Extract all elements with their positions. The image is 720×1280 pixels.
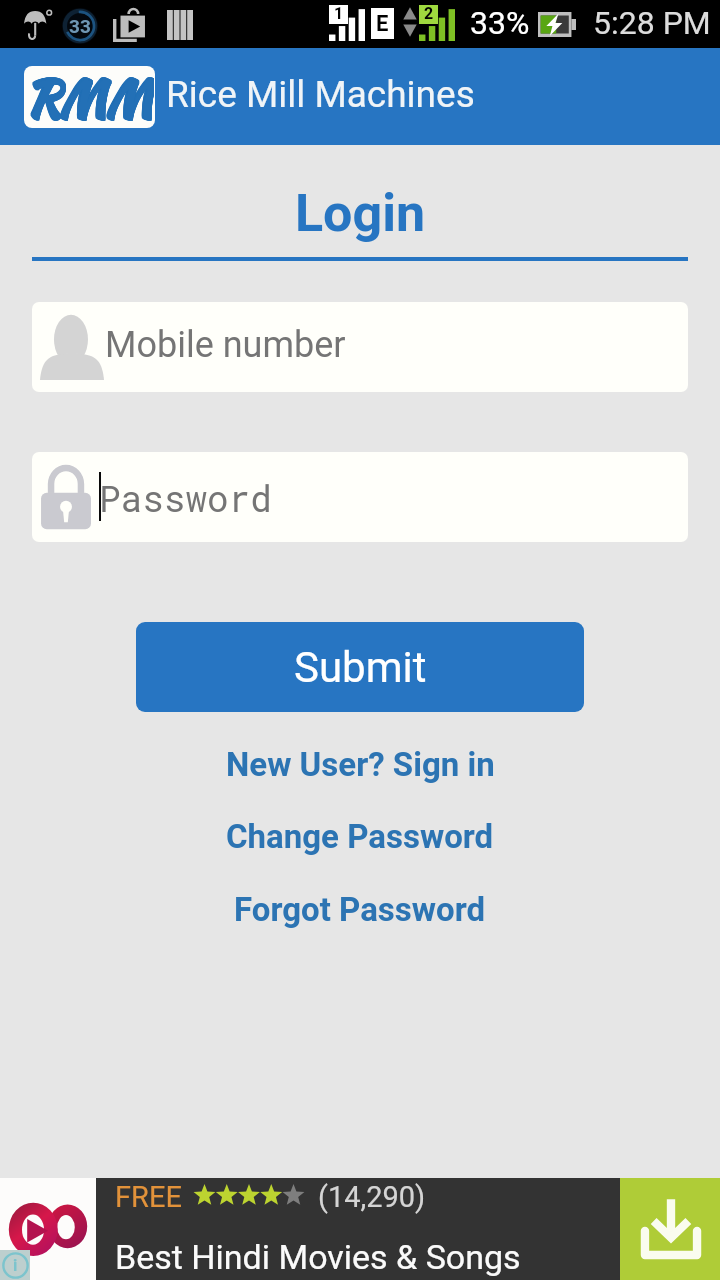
button[interactable]: Submit (136, 622, 584, 712)
staticText: 1 (334, 4, 344, 23)
staticText: Best Hindi Movies & Songs (115, 1237, 521, 1277)
staticText: RMM (26, 66, 153, 123)
staticText: RMM (25, 66, 152, 125)
button[interactable]: Password (32, 452, 688, 542)
staticText: RMM (27, 66, 154, 123)
staticText: FREE (115, 1180, 182, 1214)
staticText: Rice Mill Machines (166, 73, 475, 116)
staticText: E (376, 11, 389, 37)
staticText: RMM (26, 66, 153, 125)
button[interactable]: Forgot Password (0, 886, 720, 932)
staticText: RMM (27, 66, 154, 125)
button[interactable]: i (0, 1178, 96, 1280)
staticText: RMM (25, 66, 152, 123)
staticText: New User? Sign in (226, 745, 495, 784)
button[interactable]: New User? Sign in (0, 741, 720, 787)
staticText: Password (99, 474, 272, 521)
button[interactable]: Install app (620, 1178, 720, 1280)
staticText: RMM (27, 66, 154, 124)
staticText: Change Password (226, 817, 494, 856)
staticText: RMM (27, 66, 154, 124)
staticText: RMM (27, 66, 154, 125)
staticText: Mobile number (105, 324, 346, 366)
staticText: Login (0, 183, 720, 244)
staticText: (14,290) (318, 1180, 426, 1214)
staticText: RMM (25, 66, 152, 124)
staticText: 2 (424, 4, 434, 23)
staticText: i (13, 1256, 18, 1275)
staticText: RMM (26, 66, 153, 124)
staticText: RMM (26, 66, 153, 125)
button[interactable]: Mobile number (32, 302, 688, 392)
staticText: 33% (470, 4, 530, 42)
button[interactable]: Change Password (0, 813, 720, 859)
staticText: RMM (26, 66, 153, 123)
staticText: 33 (69, 15, 91, 37)
button[interactable]: FREE (96, 1178, 620, 1280)
staticText: Forgot Password (234, 890, 486, 929)
staticText: 5:28 PM (593, 4, 711, 42)
staticText: RMM (26, 66, 153, 124)
staticText: Submit (294, 643, 427, 692)
staticText: RMM (27, 66, 154, 123)
